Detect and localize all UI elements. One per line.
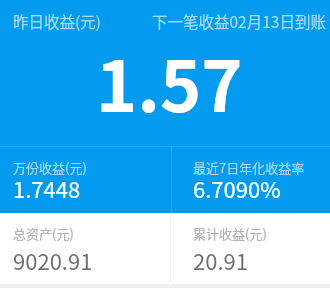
staticText: 累计收益(元) bbox=[193, 224, 267, 243]
staticText: 最近7日年化收益率 bbox=[193, 158, 305, 177]
staticText: 20.91 bbox=[193, 244, 248, 276]
staticText: 1.57 bbox=[96, 31, 243, 132]
button[interactable]: 最近7日年化收益率 bbox=[193, 147, 330, 213]
button[interactable]: 万份收益(元) bbox=[13, 147, 163, 213]
button[interactable]: 昨日收益(元) bbox=[13, 10, 101, 32]
staticText: 总资产(元) bbox=[13, 224, 74, 243]
button[interactable]: 总资产(元) bbox=[13, 213, 163, 279]
staticText: 1.7448 bbox=[13, 172, 81, 204]
staticText: 6.7090% bbox=[193, 172, 281, 204]
button[interactable]: 下一笔收益02月13日到账 bbox=[152, 10, 326, 32]
staticText: 万份收益(元) bbox=[13, 158, 87, 177]
staticText: 9020.91 bbox=[13, 244, 93, 276]
button[interactable]: 累计收益(元) bbox=[193, 213, 330, 279]
